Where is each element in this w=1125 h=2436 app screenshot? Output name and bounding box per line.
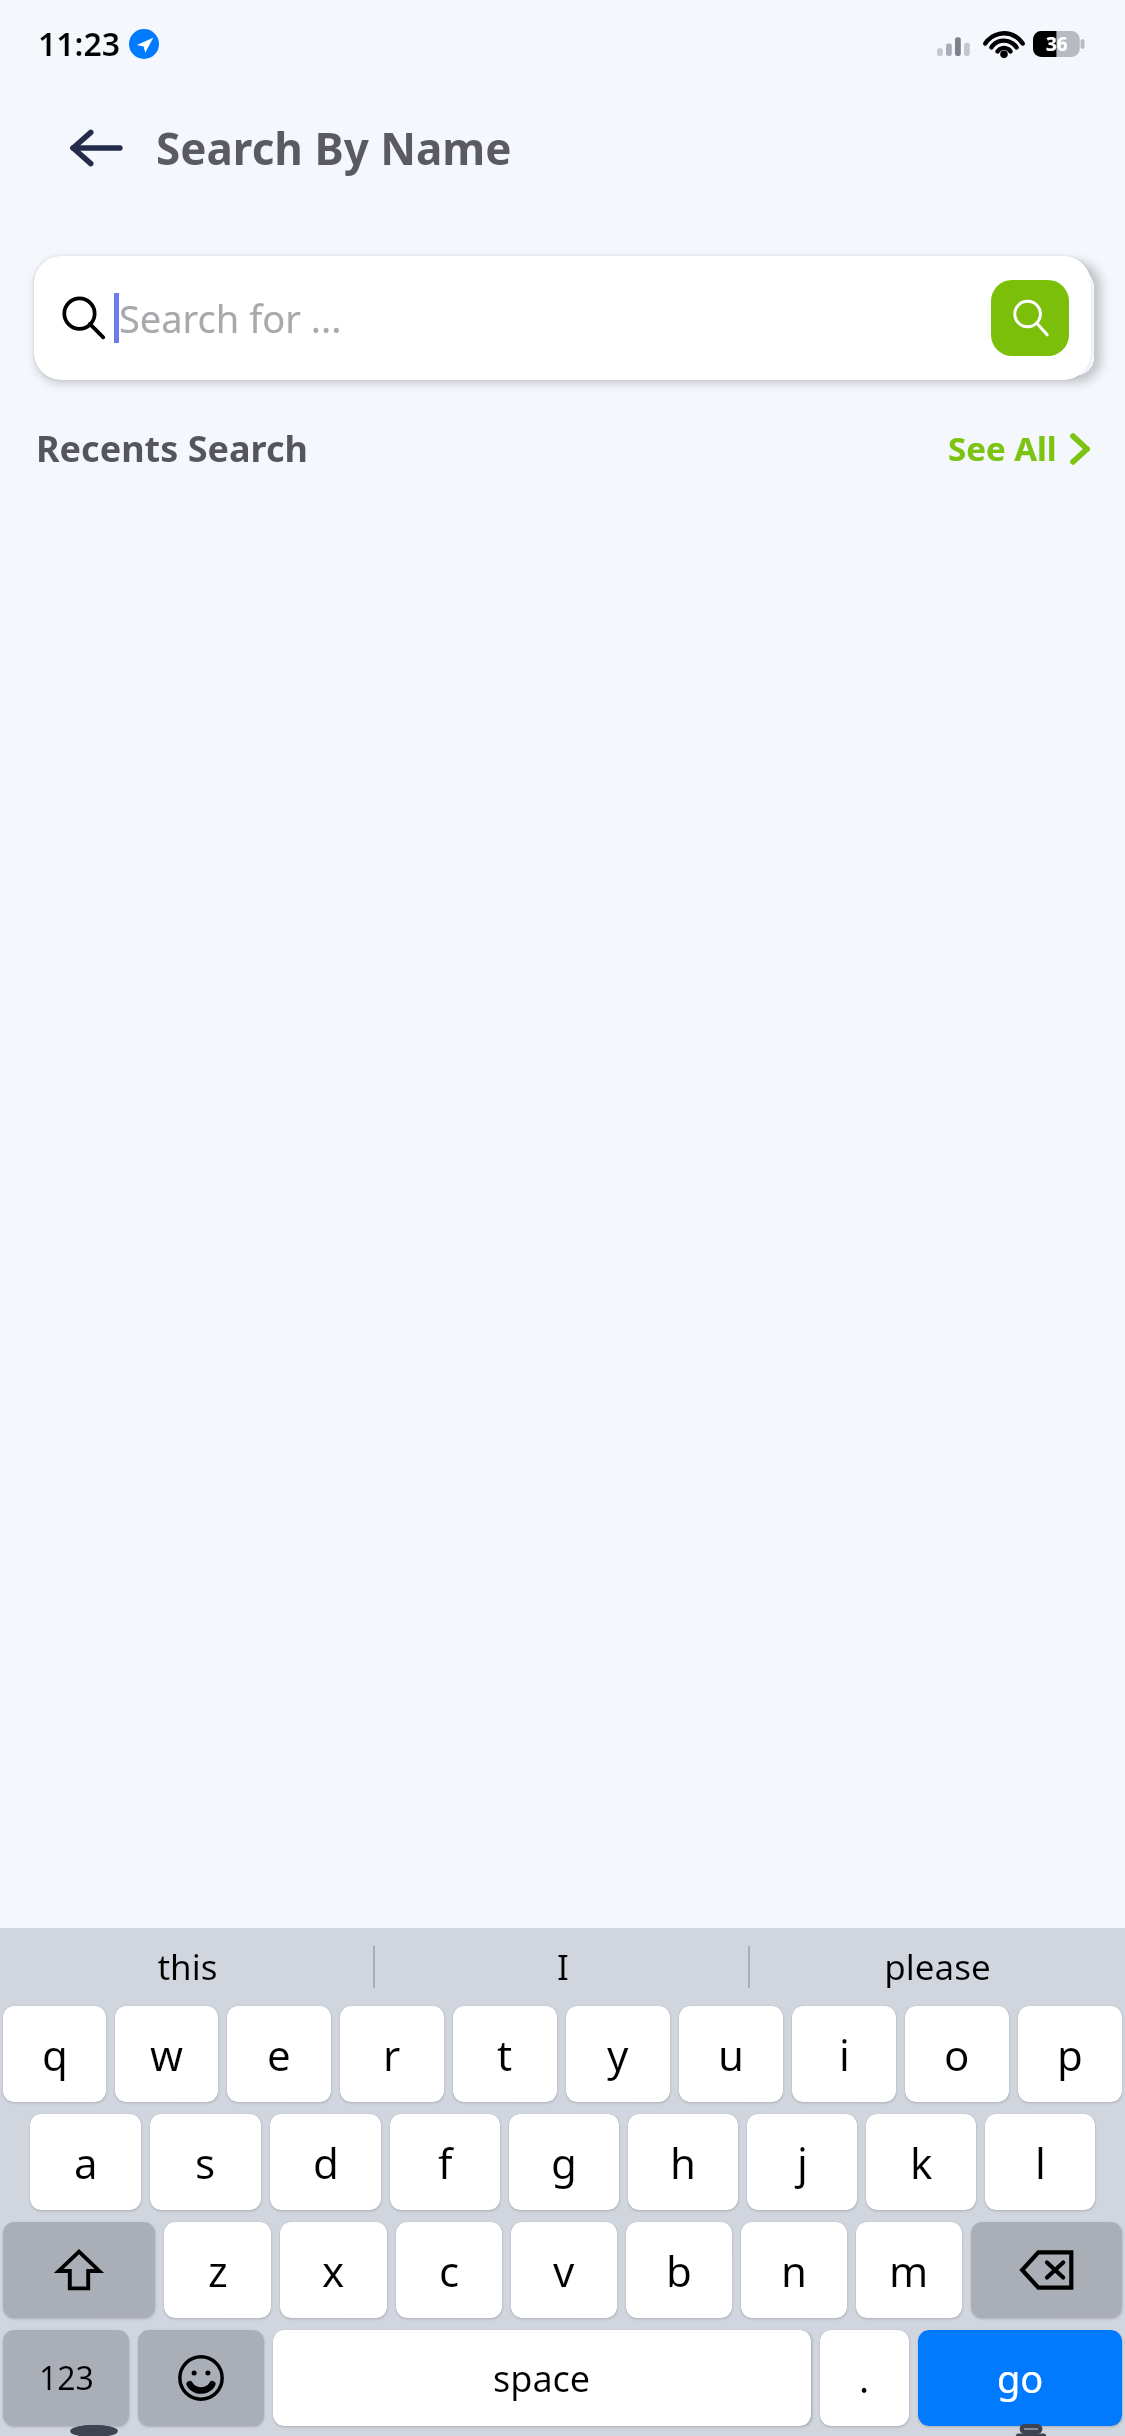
- staticText: h: [670, 2134, 696, 2191]
- staticText: i: [839, 2026, 850, 2083]
- staticText: l: [1035, 2134, 1046, 2191]
- staticText: w: [150, 2026, 184, 2083]
- staticText: g: [551, 2134, 577, 2191]
- button[interactable]: b: [626, 2222, 732, 2318]
- button[interactable]: t: [453, 2006, 557, 2102]
- staticText: 123: [39, 2356, 94, 2400]
- button[interactable]: d: [270, 2114, 381, 2210]
- staticText: x: [322, 2242, 345, 2299]
- staticText: f: [438, 2134, 453, 2191]
- staticText: b: [666, 2242, 692, 2299]
- button[interactable]: See All: [948, 426, 1091, 471]
- button[interactable]: Search: [56, 291, 110, 345]
- button[interactable]: .: [820, 2330, 909, 2426]
- button[interactable]: k: [866, 2114, 976, 2210]
- staticText: Search By Name: [156, 118, 512, 178]
- button[interactable]: w: [115, 2006, 218, 2102]
- staticText: p: [1057, 2026, 1083, 2083]
- button[interactable]: p: [1018, 2006, 1122, 2102]
- button[interactable]: e: [227, 2006, 331, 2102]
- button[interactable]: v: [511, 2222, 617, 2318]
- staticText: o: [944, 2026, 970, 2083]
- staticText: I: [557, 1943, 569, 1991]
- staticText: k: [910, 2134, 933, 2191]
- staticText: r: [383, 2026, 401, 2083]
- button[interactable]: a: [30, 2114, 141, 2210]
- button[interactable]: h: [628, 2114, 738, 2210]
- staticText: m: [889, 2242, 929, 2299]
- staticText: s: [195, 2134, 216, 2191]
- button[interactable]: s: [150, 2114, 261, 2210]
- button[interactable]: Emoji: [138, 2330, 264, 2426]
- button[interactable]: f: [390, 2114, 500, 2210]
- staticText: e: [267, 2026, 291, 2083]
- button[interactable]: Back: [58, 110, 134, 186]
- button[interactable]: space: [273, 2330, 811, 2426]
- button[interactable]: q: [3, 2006, 106, 2102]
- staticText: t: [497, 2026, 513, 2083]
- staticText: .: [859, 2352, 870, 2404]
- staticText: please: [884, 1943, 991, 1991]
- button[interactable]: g: [509, 2114, 619, 2210]
- button[interactable]: please: [750, 1928, 1125, 2006]
- button[interactable]: Backspace: [971, 2222, 1122, 2318]
- staticText: q: [42, 2026, 68, 2083]
- staticText: c: [439, 2242, 460, 2299]
- button[interactable]: j: [747, 2114, 857, 2210]
- button[interactable]: Voice input: [995, 2426, 1067, 2436]
- button[interactable]: y: [566, 2006, 670, 2102]
- staticText: z: [208, 2242, 228, 2299]
- staticText: See All: [948, 426, 1057, 471]
- staticText: Search for ...: [119, 292, 342, 344]
- button[interactable]: m: [856, 2222, 962, 2318]
- staticText: 11:23: [38, 22, 121, 66]
- button[interactable]: I: [375, 1928, 750, 2006]
- staticText: Recents Search: [36, 424, 308, 473]
- staticText: u: [718, 2026, 744, 2083]
- button[interactable]: Search: [991, 280, 1069, 356]
- button[interactable]: Change keyboard language: [58, 2426, 130, 2436]
- button[interactable]: r: [340, 2006, 444, 2102]
- button[interactable]: x: [280, 2222, 387, 2318]
- staticText: j: [797, 2134, 808, 2191]
- staticText: d: [313, 2134, 339, 2191]
- staticText: y: [607, 2026, 629, 2083]
- button[interactable]: z: [164, 2222, 271, 2318]
- staticText: n: [781, 2242, 807, 2299]
- button[interactable]: n: [741, 2222, 847, 2318]
- button[interactable]: Shift: [3, 2222, 155, 2318]
- staticText: 36: [1046, 31, 1068, 57]
- button[interactable]: u: [679, 2006, 783, 2102]
- staticText: a: [74, 2134, 98, 2191]
- button[interactable]: 123: [3, 2330, 129, 2426]
- staticText: go: [997, 2352, 1044, 2404]
- button[interactable]: go: [918, 2330, 1122, 2426]
- button[interactable]: this: [0, 1928, 375, 2006]
- button[interactable]: i: [792, 2006, 896, 2102]
- button[interactable]: l: [985, 2114, 1095, 2210]
- staticText: space: [493, 2354, 591, 2403]
- staticText: v: [553, 2242, 575, 2299]
- staticText: this: [157, 1943, 218, 1991]
- button[interactable]: c: [396, 2222, 502, 2318]
- button[interactable]: o: [905, 2006, 1009, 2102]
